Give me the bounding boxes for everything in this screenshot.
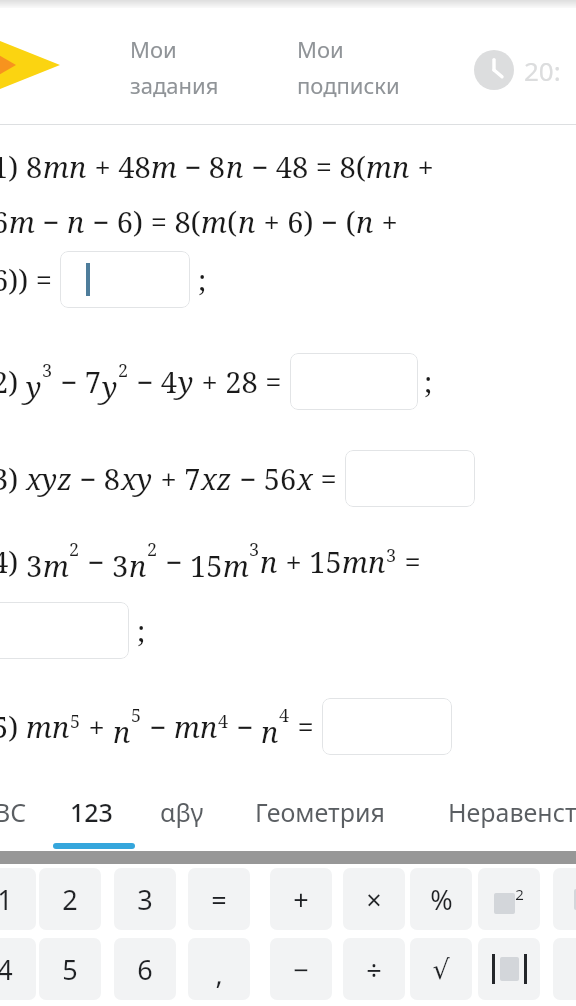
staticText: + (81, 707, 113, 746)
staticText: − (158, 542, 190, 581)
staticText: + (410, 147, 434, 186)
staticText: xz (201, 459, 232, 498)
staticText: − 7 (53, 362, 102, 401)
button[interactable]: 3 (114, 868, 176, 930)
staticText: n (67, 202, 85, 241)
staticText: 5 (131, 703, 142, 727)
staticText: ( (227, 202, 238, 241)
staticText: m (43, 546, 69, 585)
staticText: − 8 (177, 147, 226, 186)
staticText: 2) (0, 362, 26, 401)
staticText: mn (366, 147, 410, 186)
staticText: 3 (26, 546, 43, 585)
button[interactable]: BC (0, 795, 27, 829)
staticText: + 48 (87, 147, 151, 186)
staticText: 3 (112, 546, 129, 585)
staticText: 1) (0, 147, 26, 186)
button[interactable] (553, 868, 576, 930)
staticText: n (226, 147, 244, 186)
staticText: 2 (147, 537, 158, 561)
staticText: n (260, 542, 278, 581)
staticText: n (129, 546, 147, 585)
button[interactable]: Time (474, 50, 514, 90)
staticText: , (215, 955, 223, 992)
staticText: − (229, 707, 261, 746)
button[interactable]: Мои (130, 34, 219, 100)
staticText: 6 (0, 202, 9, 241)
button[interactable]: × (343, 868, 405, 930)
staticText: % (430, 881, 453, 918)
button[interactable]: 2 (478, 868, 540, 930)
staticText: − 6) = 8( (85, 202, 201, 241)
staticText: y (26, 367, 42, 406)
button[interactable]: 1 (0, 868, 36, 930)
staticText: 2 (118, 358, 129, 382)
staticText: − 4 (129, 362, 178, 401)
button[interactable]: % (410, 868, 472, 930)
button[interactable]: = (188, 868, 250, 930)
button[interactable] (478, 938, 540, 1000)
button[interactable]: √ (410, 938, 472, 1000)
staticText: Мои (297, 34, 344, 64)
button[interactable]: ÷ (343, 938, 405, 1000)
button[interactable]: Logo (0, 30, 72, 100)
button[interactable] (0, 602, 129, 659)
button[interactable] (290, 353, 418, 410)
button[interactable]: 5 (39, 938, 101, 1000)
staticText: 6)) = (0, 260, 60, 299)
button[interactable] (345, 450, 475, 507)
button[interactable]: Геометрия (255, 795, 385, 829)
button[interactable]: + (270, 868, 332, 930)
staticText: + 7 (153, 459, 201, 498)
button[interactable]: Неравенст (448, 795, 576, 829)
button[interactable]: αβγ (160, 795, 204, 829)
staticText: 20: (524, 53, 561, 88)
staticText: 8 (26, 147, 43, 186)
button[interactable]: 6 (114, 938, 176, 1000)
staticText: 2 (515, 884, 524, 904)
staticText: = (397, 542, 421, 581)
staticText: mn (174, 707, 218, 746)
staticText: m (9, 202, 35, 241)
button[interactable]: Мои (297, 34, 400, 100)
staticText: n (356, 202, 374, 241)
staticText: = (313, 459, 345, 498)
button[interactable]: , (188, 938, 250, 1000)
staticText: 3) (0, 459, 26, 498)
staticText: − 56 (232, 459, 297, 498)
staticText: 5) (0, 707, 26, 746)
staticText: xyz (26, 459, 72, 498)
button[interactable] (322, 698, 452, 755)
staticText: 5 (70, 709, 81, 733)
staticText: ; (198, 260, 207, 299)
button[interactable]: 4 (0, 938, 36, 1000)
button[interactable]: 2 (39, 868, 101, 930)
staticText: 2 (69, 537, 80, 561)
staticText: m (151, 147, 177, 186)
staticText: ; (137, 611, 146, 650)
staticText: 3 (249, 537, 260, 561)
staticText: n (238, 202, 256, 241)
staticText: = (290, 707, 322, 746)
staticText: m (201, 202, 227, 241)
staticText: 3 (137, 881, 153, 918)
button[interactable] (60, 251, 190, 308)
staticText: + (374, 202, 398, 241)
staticText: − 48 = 8( (244, 147, 366, 186)
staticText: x (297, 459, 313, 498)
button[interactable]: 123 (70, 795, 113, 829)
staticText: 1 (0, 881, 13, 918)
staticText: − (80, 542, 112, 581)
staticText: + 15 (278, 542, 342, 581)
staticText: n (261, 712, 279, 751)
staticText: m (223, 546, 249, 585)
staticText: = (211, 881, 227, 918)
staticText: xy (121, 459, 153, 498)
staticText: × (366, 881, 382, 918)
staticText: задания (130, 70, 219, 100)
staticText: y (102, 367, 118, 406)
staticText: − (293, 951, 309, 988)
button[interactable]: − (270, 938, 332, 1000)
staticText: Мои (130, 34, 177, 64)
